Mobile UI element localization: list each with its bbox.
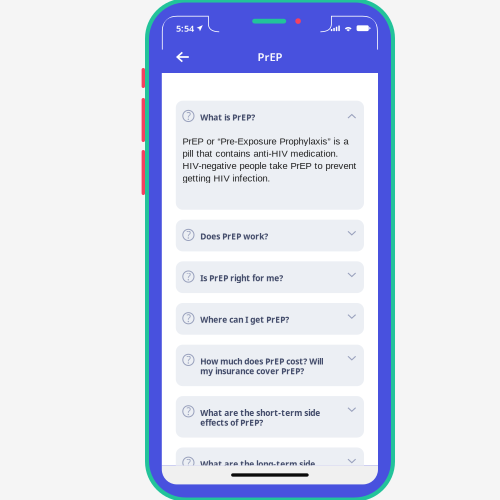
staticText: 5:54 xyxy=(176,22,194,34)
staticText: Where can I get PrEP? xyxy=(200,314,289,325)
staticText: ? xyxy=(186,270,190,283)
staticText: ? xyxy=(186,228,190,242)
button[interactable]: ? xyxy=(176,261,364,293)
button[interactable]: ? xyxy=(176,447,364,489)
button[interactable]: ? xyxy=(176,345,364,386)
staticText: What is PrEP? xyxy=(200,112,255,123)
staticText: ? xyxy=(186,404,190,418)
staticText: What are the short-term side effects of … xyxy=(200,407,320,428)
staticText: What are the long-term side effects of P… xyxy=(200,458,315,479)
staticText: ? xyxy=(186,311,190,325)
staticText: PrEP or “Pre-Exposure Prophylaxis” is a … xyxy=(183,136,357,183)
button[interactable]: ? xyxy=(176,303,364,335)
staticText: How much does PrEP cost? Will my insuran… xyxy=(200,356,323,377)
staticText: ? xyxy=(186,353,190,367)
staticText: Is PrEP right for me? xyxy=(200,272,283,284)
button[interactable]: Back xyxy=(162,46,200,68)
button[interactable]: ? xyxy=(176,101,364,210)
button[interactable]: ? xyxy=(176,220,364,251)
staticText: PrEP xyxy=(257,49,282,65)
staticText: Does PrEP work? xyxy=(200,231,268,242)
staticText: ? xyxy=(186,456,190,470)
button[interactable]: ? xyxy=(176,396,364,438)
staticText: ? xyxy=(186,109,190,123)
